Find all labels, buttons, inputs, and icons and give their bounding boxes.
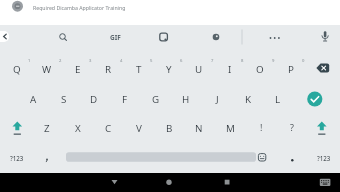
button[interactable] xyxy=(4,116,28,138)
staticText: O xyxy=(256,63,264,76)
button[interactable]: ! xyxy=(245,116,277,138)
button[interactable] xyxy=(38,150,56,165)
staticText: B xyxy=(166,122,173,135)
staticText: 6 xyxy=(180,58,183,64)
button[interactable]: O xyxy=(244,58,276,80)
staticText: ?123 xyxy=(317,154,331,162)
staticText: D xyxy=(90,93,98,106)
button[interactable] xyxy=(208,29,224,45)
button[interactable]: L xyxy=(262,88,294,110)
staticText: 2 xyxy=(59,58,62,64)
button[interactable] xyxy=(267,29,283,45)
button[interactable]: ? xyxy=(276,116,308,138)
button[interactable]: H xyxy=(170,88,202,110)
button[interactable]: P xyxy=(275,58,307,80)
button[interactable]: B xyxy=(153,117,185,139)
button[interactable]: F xyxy=(109,88,141,110)
staticText: 3 xyxy=(89,58,92,64)
button[interactable]: R xyxy=(92,58,124,80)
staticText: Y xyxy=(166,63,172,76)
button[interactable]: E xyxy=(62,58,94,80)
button[interactable] xyxy=(252,150,272,165)
button[interactable]: U xyxy=(183,58,215,80)
staticText: K xyxy=(245,93,252,106)
button[interactable]: ?123 xyxy=(1,147,33,169)
staticText: 0 xyxy=(302,58,305,64)
staticText: P xyxy=(288,63,294,76)
button[interactable]: T xyxy=(123,58,155,80)
button[interactable] xyxy=(300,88,330,110)
staticText: W xyxy=(42,63,52,76)
button[interactable] xyxy=(216,174,237,191)
button[interactable]: G xyxy=(140,88,172,110)
button[interactable]: M xyxy=(214,117,246,139)
staticText: 4 xyxy=(120,58,123,64)
staticText: 1 xyxy=(28,58,31,64)
button[interactable]: ?123 xyxy=(308,147,340,169)
staticText: Required Dicamba Applicator Training xyxy=(33,4,126,11)
button[interactable] xyxy=(308,60,336,76)
staticText: H xyxy=(182,93,190,106)
button[interactable]: X xyxy=(62,117,94,139)
button[interactable]: A xyxy=(17,88,49,110)
button[interactable]: I xyxy=(214,58,246,80)
staticText: 9 xyxy=(272,58,275,64)
button[interactable] xyxy=(66,150,256,164)
staticText: ! xyxy=(260,121,263,133)
button[interactable]: Z xyxy=(31,117,63,139)
button[interactable]: V xyxy=(123,117,155,139)
button[interactable]: D xyxy=(78,88,110,110)
staticText: 5 xyxy=(150,58,153,64)
button[interactable]: N xyxy=(183,117,215,139)
staticText: A xyxy=(30,93,37,106)
button[interactable] xyxy=(104,174,125,191)
staticText: R xyxy=(105,63,112,76)
button[interactable]: J xyxy=(201,88,233,110)
staticText: Z xyxy=(44,122,50,135)
button[interactable] xyxy=(155,29,171,45)
staticText: I xyxy=(228,63,232,76)
staticText: M xyxy=(226,122,235,135)
button[interactable] xyxy=(0,30,12,43)
staticText: 8 xyxy=(241,58,244,64)
button[interactable] xyxy=(314,174,336,191)
staticText: ?123 xyxy=(10,154,24,162)
staticText: F xyxy=(122,93,128,106)
button[interactable] xyxy=(310,116,334,138)
staticText: 7 xyxy=(211,58,214,64)
button[interactable]: Q xyxy=(1,58,33,80)
button[interactable] xyxy=(158,174,179,191)
button[interactable] xyxy=(283,150,301,165)
staticText: X xyxy=(75,122,81,135)
button[interactable]: Y xyxy=(153,58,185,80)
staticText: T xyxy=(136,63,142,76)
staticText: L xyxy=(275,93,281,106)
staticText: C xyxy=(105,122,112,135)
staticText: GIF xyxy=(110,33,121,42)
button[interactable]: C xyxy=(92,117,124,139)
button[interactable]: Required Dicamba Applicator Training xyxy=(33,1,193,14)
staticText: G xyxy=(152,93,160,106)
staticText: Q xyxy=(13,63,21,76)
staticText: V xyxy=(136,122,142,135)
button[interactable] xyxy=(54,29,70,45)
button[interactable]: K xyxy=(232,88,264,110)
button[interactable]: GIF xyxy=(100,30,130,44)
staticText: J xyxy=(216,93,219,106)
button[interactable] xyxy=(317,29,333,45)
button[interactable]: S xyxy=(48,88,80,110)
staticText: E xyxy=(75,63,81,76)
staticText: U xyxy=(195,63,203,76)
staticText: S xyxy=(61,93,67,106)
staticText: N xyxy=(195,122,203,135)
staticText: ? xyxy=(290,121,294,133)
button[interactable]: W xyxy=(31,58,63,80)
